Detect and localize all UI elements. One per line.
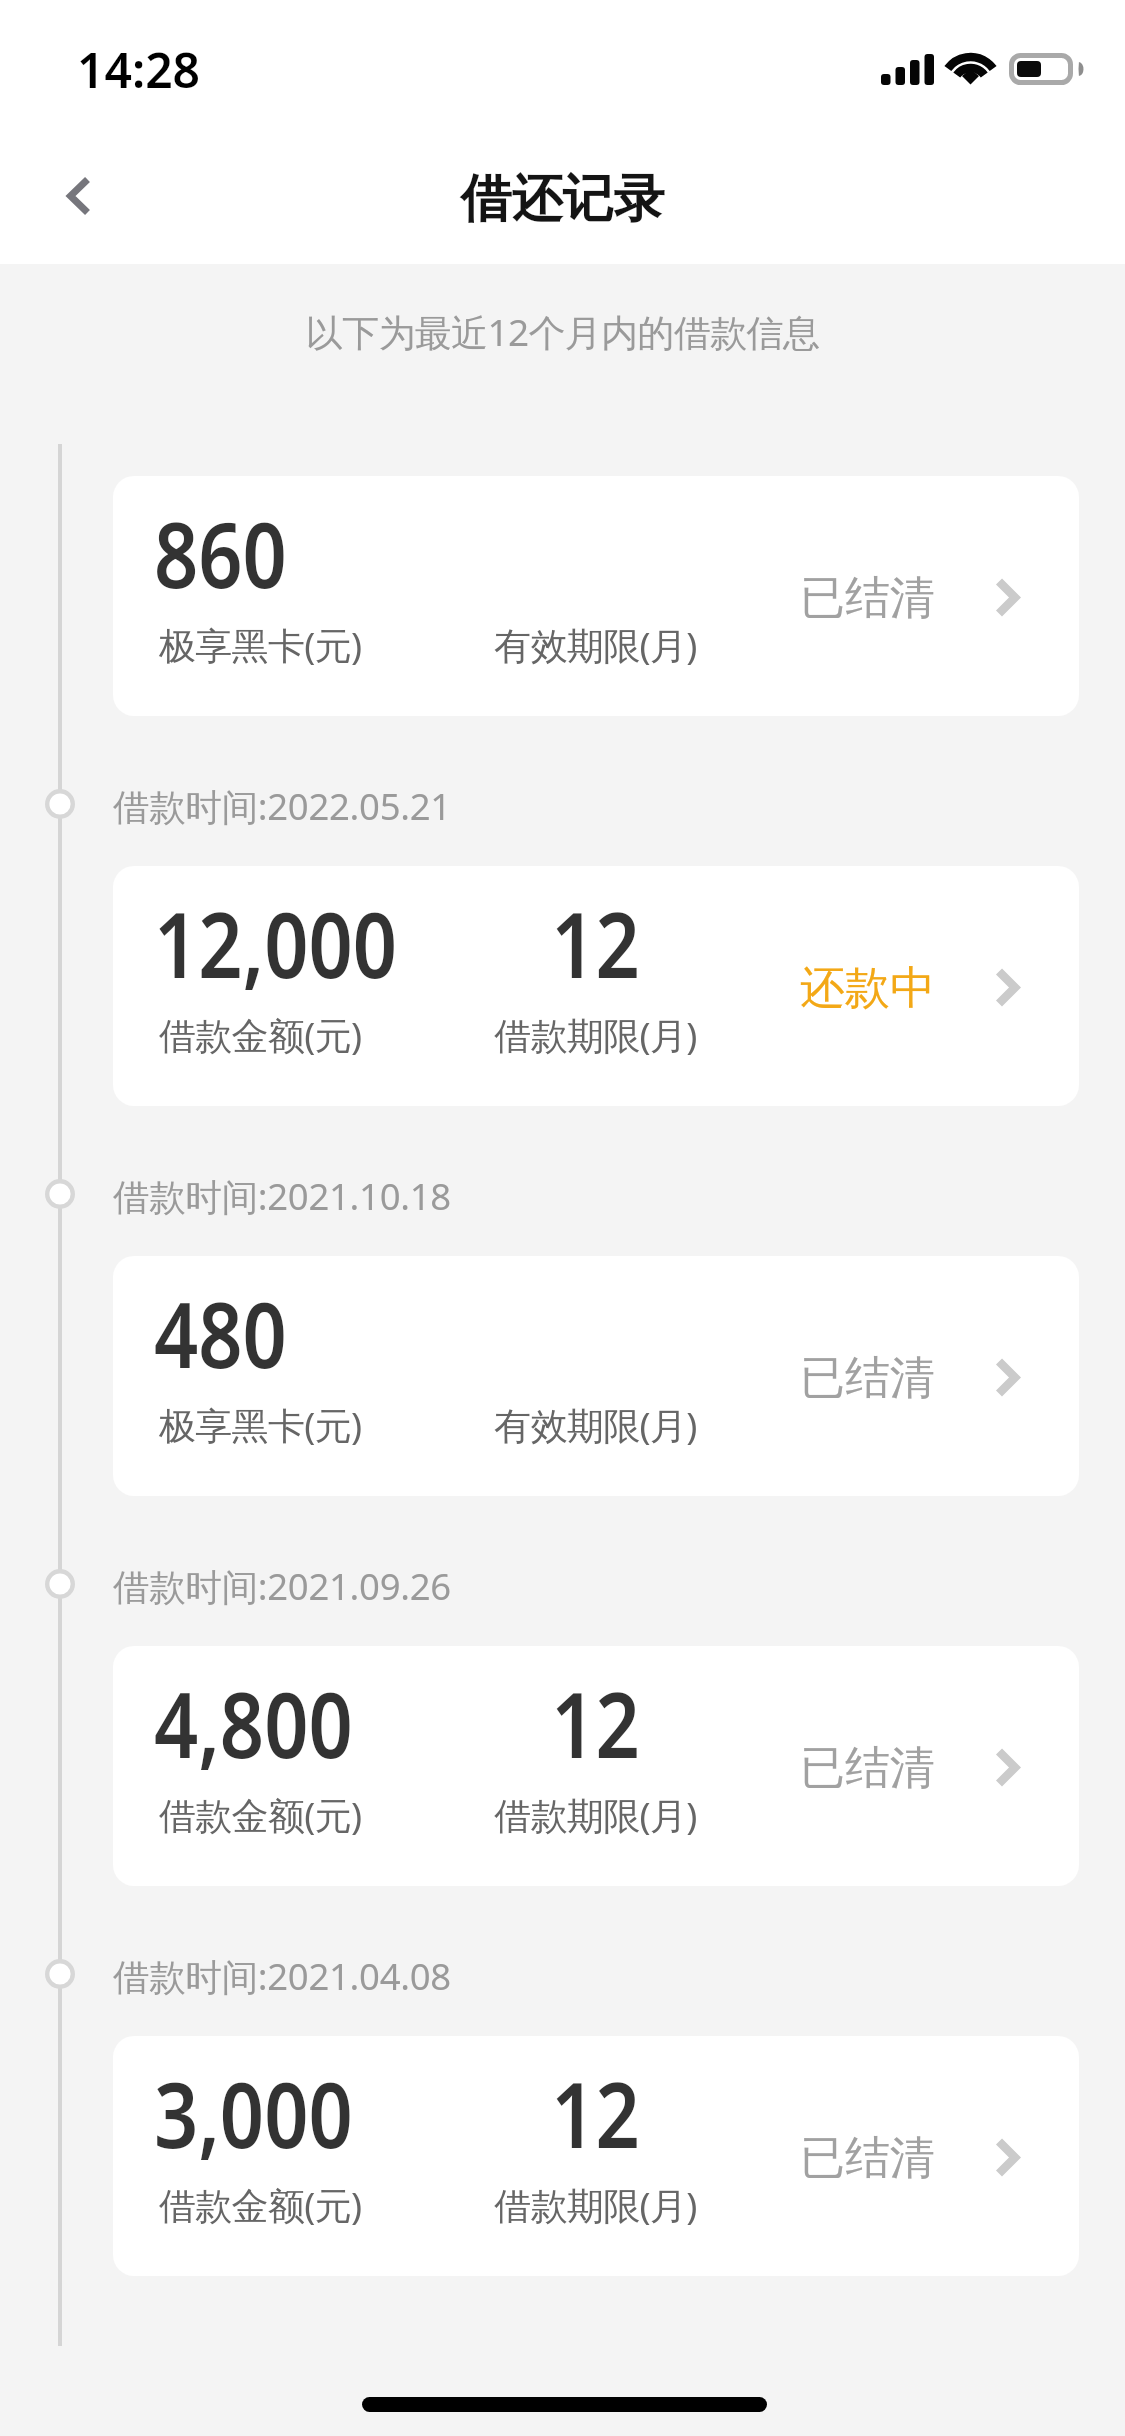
staticText: 借款期限(月): [458, 2179, 733, 2230]
staticText: 14:28: [77, 37, 201, 102]
staticText: 借款时间:2021.10.18: [113, 1171, 451, 1221]
staticText: 借款金额(元): [159, 1789, 362, 1840]
staticText: 已结清: [800, 1350, 935, 1407]
button[interactable]: 480: [113, 1256, 1079, 1496]
button[interactable]: 3,000: [113, 2036, 1079, 2276]
staticText: 借还记录: [0, 167, 1125, 231]
staticText: 12: [477, 2052, 714, 2175]
staticText: 3,000: [154, 2052, 353, 2175]
staticText: 以下为最近12个月内的借款信息: [0, 306, 1125, 357]
staticText: 12,000: [154, 882, 397, 1005]
other: View detail: [987, 577, 1027, 617]
button[interactable]: 12,000: [113, 866, 1079, 1106]
button[interactable]: 4,800: [113, 1646, 1079, 1886]
staticText: 860: [154, 492, 287, 615]
staticText: 极享黑卡(元): [159, 1399, 362, 1450]
staticText: 极享黑卡(元): [159, 619, 362, 670]
staticText: 借款时间:2022.05.21: [113, 781, 451, 831]
other: View detail: [987, 1357, 1027, 1397]
staticText: 已结清: [800, 1740, 935, 1797]
button[interactable]: 860: [113, 476, 1079, 716]
staticText: 还款中: [800, 960, 935, 1017]
other: View detail: [987, 967, 1027, 1007]
staticText: 4,800: [154, 1662, 353, 1785]
staticText: 借款金额(元): [159, 2179, 362, 2230]
staticText: 12: [477, 1662, 714, 1785]
staticText: 借款时间:2021.04.08: [113, 1951, 451, 2001]
staticText: 有效期限(月): [458, 619, 733, 670]
staticText: 已结清: [800, 2130, 935, 2187]
staticText: 借款期限(月): [458, 1009, 733, 1060]
staticText: 借款期限(月): [458, 1789, 733, 1840]
staticText: 借款时间:2021.09.26: [113, 1561, 451, 1611]
staticText: 480: [154, 1272, 287, 1395]
staticText: 已结清: [800, 570, 935, 627]
button[interactable]: Back: [31, 148, 127, 244]
staticText: 借款金额(元): [159, 1009, 362, 1060]
staticText: 有效期限(月): [458, 1399, 733, 1450]
staticText: 12: [477, 882, 714, 1005]
other: View detail: [987, 2137, 1027, 2177]
other: View detail: [987, 1747, 1027, 1787]
